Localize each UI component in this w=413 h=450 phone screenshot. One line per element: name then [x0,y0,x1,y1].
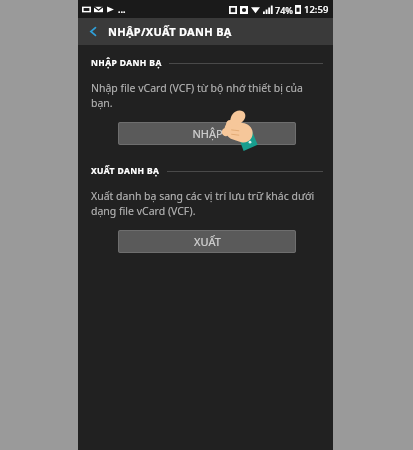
staticText: Xuất danh bạ sang các vị trí lưu trữ khá… [91,189,315,218]
staticText: NHẬP/XUẤT DANH BẠ [108,24,232,39]
button[interactable]: NHẬP [118,122,296,145]
button[interactable]: XUẤT [118,230,296,253]
staticText: Nhập file vCard (VCF) từ bộ nhớ thiết bị… [91,81,315,110]
staticText: XUẤT DANH BẠ [91,165,160,177]
staticText: 12:59 [304,3,329,16]
staticText: ... [118,3,126,15]
staticText: NHẬP DANH BẠ [91,57,162,69]
button[interactable]: Back [78,18,108,45]
staticText: XUẤT [194,234,221,249]
staticText: NHẬP [192,126,223,141]
staticText: 74% [275,4,293,16]
